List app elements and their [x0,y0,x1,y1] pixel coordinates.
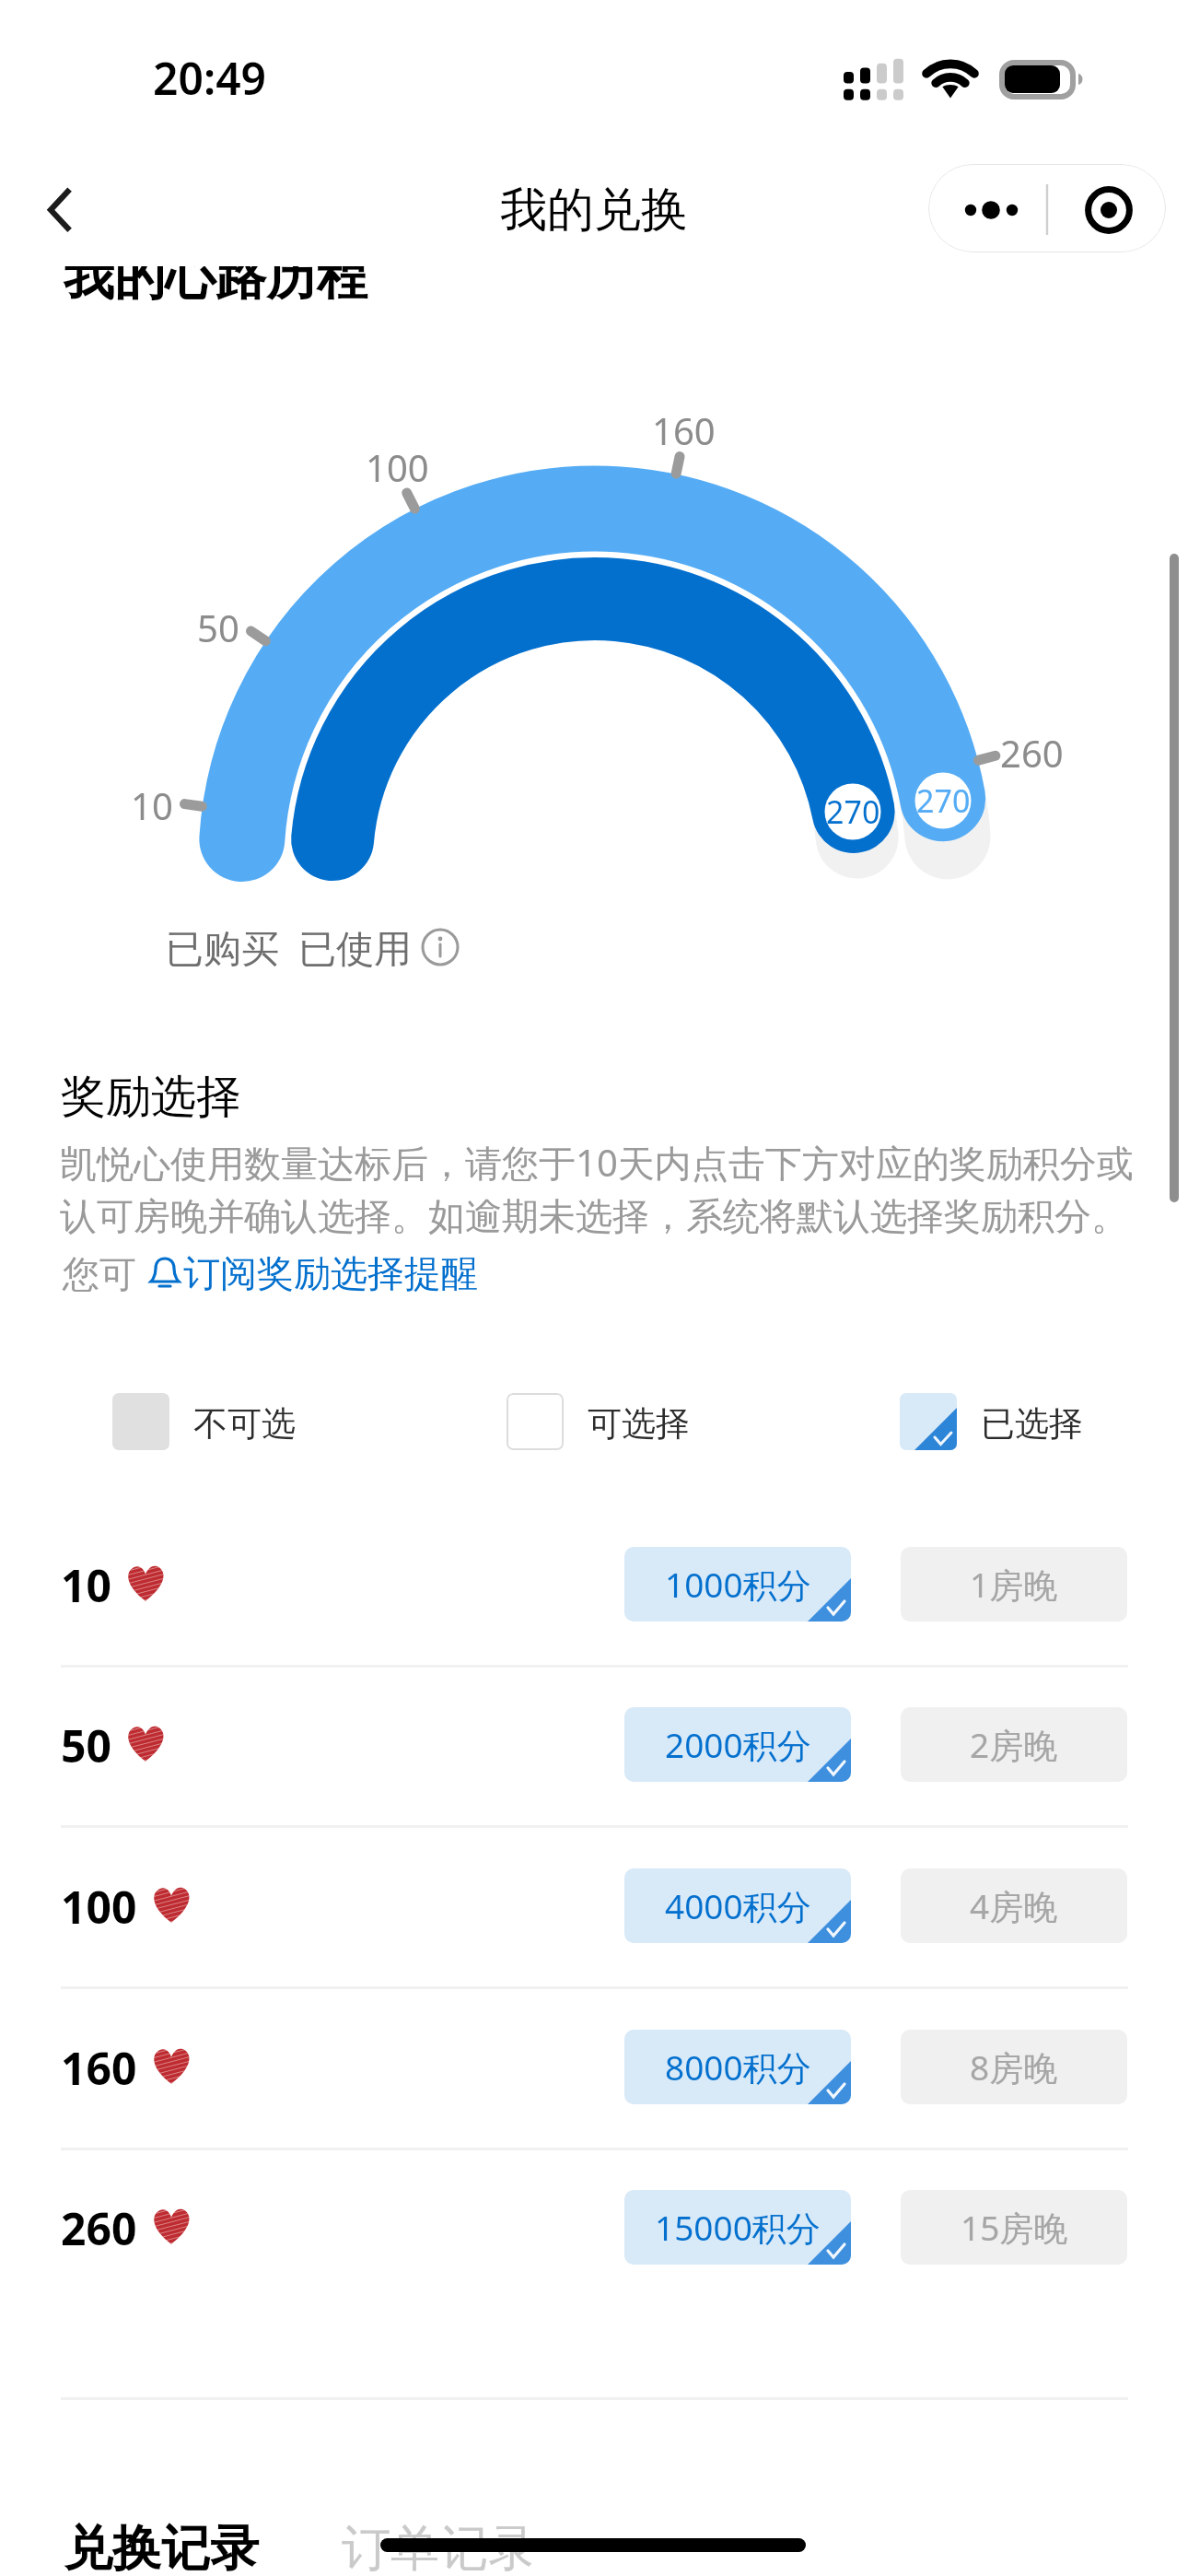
button[interactable]: 兑换记录 [64,2518,259,2576]
button[interactable]: 1房晚 [901,1547,1127,1622]
staticText: 凯悦心使用数量达标后，请您于10天内点击下方对应的奖励积分或 认可房晚并确认选择… [60,1137,1147,1240]
staticText: 4房晚 [970,1882,1058,1929]
staticText: 兑换记录 [64,2518,259,2576]
button[interactable]: 15房晚 [901,2190,1127,2265]
staticText: 可选择 [588,1402,690,1446]
staticText: 15房晚 [961,2204,1068,2251]
button[interactable]: 4000积分 [624,1868,851,1943]
staticText: 订阅奖励选择提醒 [183,1250,478,1296]
staticText: 20:49 [153,48,267,108]
button[interactable]: 8000积分 [624,2030,851,2104]
staticText: 我的心路历程 [64,245,367,309]
staticText: 260 [1000,728,1064,778]
button[interactable]: 订单记录 [342,2518,537,2576]
staticText: 10 [131,780,173,830]
staticText: 270 [826,790,880,833]
button[interactable]: 订阅奖励选择提醒 [146,1250,478,1296]
button[interactable]: 2000积分 [624,1707,851,1782]
staticText: 8000积分 [665,2043,811,2090]
staticText: 不可选 [193,1402,296,1446]
staticText: 260 [61,2198,137,2258]
staticText: 100 [366,442,429,492]
button[interactable]: 4房晚 [901,1868,1127,1943]
staticText: 270 [916,779,971,822]
staticText: 1房晚 [970,1561,1058,1608]
staticText: 我的兑换 [0,181,1188,240]
staticText: 4000积分 [665,1882,811,1929]
staticText: 15000积分 [655,2204,821,2251]
staticText: 已购买 已使用 [166,921,422,973]
staticText: 已选择 [981,1402,1083,1446]
button[interactable]: 1000积分 [624,1547,851,1622]
staticText: 您可 [63,1247,146,1298]
staticText: 50 [197,603,239,652]
staticText: 2房晚 [970,1721,1058,1768]
button[interactable]: 8房晚 [901,2030,1127,2104]
staticText: 50 [61,1715,111,1775]
staticText: 160 [61,2038,137,2098]
button[interactable]: More options [928,164,1166,252]
staticText: 1000积分 [665,1561,811,1608]
button[interactable]: 15000积分 [624,2190,851,2265]
button[interactable]: 不可选 [112,1393,296,1450]
button[interactable]: 2房晚 [901,1707,1127,1782]
button[interactable]: 已选择 [900,1393,1083,1450]
button[interactable]: 已购买 已使用 [166,921,459,973]
staticText: 订单记录 [342,2518,537,2576]
staticText: 10 [61,1555,111,1615]
staticText: 160 [652,405,716,455]
staticText: 2000积分 [665,1721,811,1768]
button[interactable]: 可选择 [507,1393,690,1450]
staticText: 100 [61,1877,137,1937]
button[interactable]: Back [17,164,105,252]
staticText: 奖励选择 [61,1069,241,1126]
staticText: 8房晚 [970,2043,1058,2090]
